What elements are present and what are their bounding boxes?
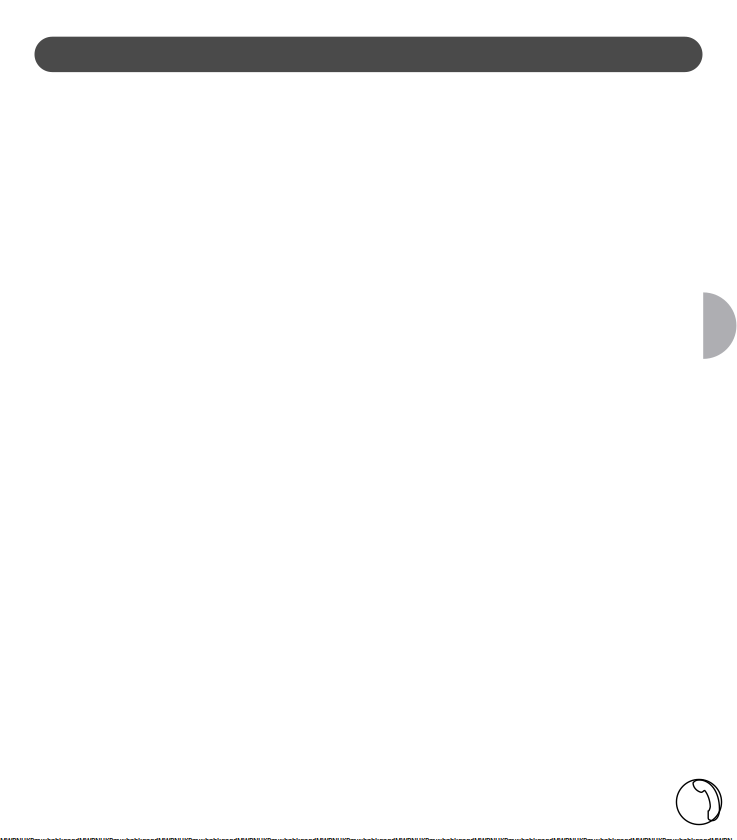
staticText: MWBNHKRmwbnhkgpqdMWBNHKRmwbnhkgpqdMWBNHK… <box>0 836 735 840</box>
button[interactable]: Call <box>676 779 722 825</box>
button[interactable]: Open panel <box>703 292 737 359</box>
button[interactable]: Search <box>34 37 702 72</box>
